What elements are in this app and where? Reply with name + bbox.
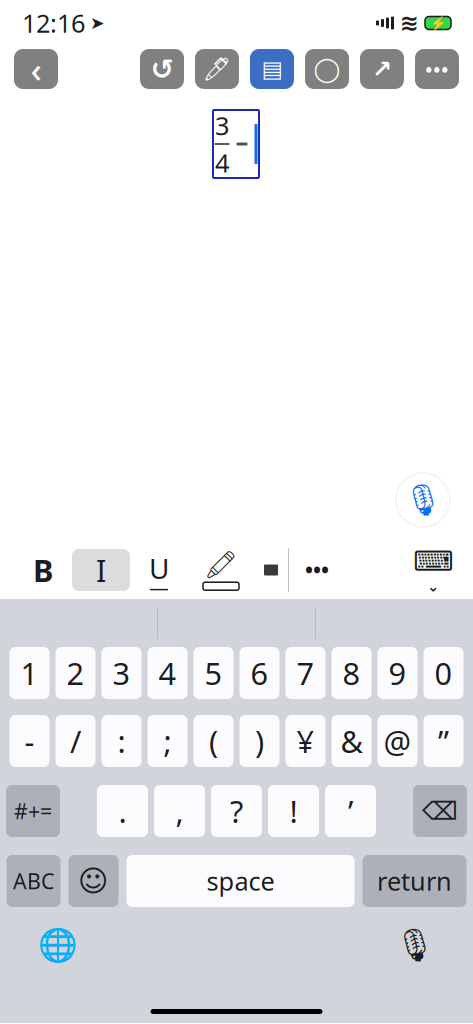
button[interactable]: Dictate xyxy=(396,473,450,527)
staticText: ••• xyxy=(425,56,449,82)
staticText: ⚡ xyxy=(429,15,446,31)
button[interactable]: Bold xyxy=(14,549,72,591)
button[interactable]: ) xyxy=(239,715,279,767)
staticText: ’ xyxy=(348,791,353,831)
button[interactable]: Symbols xyxy=(6,785,60,837)
button[interactable]: 9 xyxy=(377,647,417,699)
button[interactable]: 6 xyxy=(239,647,279,699)
staticText: @ xyxy=(383,721,411,761)
button[interactable]: Delete xyxy=(413,785,467,837)
staticText: ABC xyxy=(13,867,54,895)
button[interactable]: More xyxy=(415,49,459,89)
staticText: - xyxy=(24,721,34,761)
button[interactable]: ¥ xyxy=(285,715,325,767)
button[interactable]: Dictation xyxy=(390,923,440,967)
staticText: ⌨ xyxy=(413,545,453,577)
staticText: ••• xyxy=(305,556,329,584)
staticText: #+= xyxy=(14,797,52,825)
staticText: ⌄ xyxy=(427,578,439,595)
staticText: & xyxy=(340,721,362,761)
staticText: ; xyxy=(163,721,171,761)
staticText: 🌐 xyxy=(38,927,78,963)
staticText: 4 xyxy=(215,146,229,179)
button[interactable]: Hide keyboard xyxy=(407,548,459,592)
staticText: ↗ xyxy=(372,55,392,83)
button[interactable]: Back xyxy=(14,49,58,89)
staticText: 0 xyxy=(434,653,452,693)
staticText: 9 xyxy=(388,653,406,693)
staticText: ” xyxy=(438,721,449,761)
staticText: 3 xyxy=(215,109,229,142)
staticText: 7 xyxy=(296,653,314,693)
staticText: ↺ xyxy=(150,53,173,85)
button[interactable]: 4 xyxy=(147,647,187,699)
button[interactable]: 1 xyxy=(9,647,49,699)
staticText: ) xyxy=(255,721,264,761)
staticText: ! xyxy=(289,791,297,831)
button[interactable]: Share xyxy=(360,49,404,89)
staticText: 🖍 xyxy=(204,550,238,580)
button[interactable]: - xyxy=(9,715,49,767)
button[interactable]: 5 xyxy=(193,647,233,699)
staticText: 4 xyxy=(158,653,176,693)
staticText: / xyxy=(70,721,81,761)
staticText: B xyxy=(33,550,53,590)
button[interactable]: & xyxy=(331,715,371,767)
staticText: , xyxy=(175,791,183,831)
staticText: : xyxy=(117,721,125,761)
staticText: ¥ xyxy=(296,721,314,761)
staticText: I xyxy=(96,550,106,590)
button[interactable]: 0 xyxy=(423,647,463,699)
button[interactable]: Next keyboard xyxy=(33,923,83,967)
button[interactable]: Insert object xyxy=(250,49,294,89)
button[interactable]: / xyxy=(55,715,95,767)
button[interactable]: 7 xyxy=(285,647,325,699)
button[interactable]: Letters xyxy=(6,855,60,907)
button[interactable]: More formatting xyxy=(289,549,345,591)
staticText: 2 xyxy=(66,653,84,693)
button[interactable]: . xyxy=(97,785,148,837)
button[interactable]: , xyxy=(154,785,205,837)
staticText: ≋ xyxy=(400,10,419,36)
staticText: 5 xyxy=(204,653,222,693)
button[interactable]: space xyxy=(126,855,354,907)
button[interactable]: return xyxy=(362,855,466,907)
button[interactable]: : xyxy=(101,715,141,767)
staticText: ▤ xyxy=(261,56,282,82)
button[interactable]: Markup xyxy=(195,49,239,89)
button[interactable]: Color xyxy=(254,549,288,591)
button[interactable]: ? xyxy=(211,785,262,837)
button[interactable]: Highlight xyxy=(188,548,254,592)
staticText: space xyxy=(206,864,274,898)
staticText: ⌫ xyxy=(422,797,458,825)
button[interactable]: Underline xyxy=(130,549,188,591)
button[interactable]: Italic xyxy=(72,549,130,591)
staticText: ◯ xyxy=(313,55,340,83)
button[interactable]: Search xyxy=(305,49,349,89)
button[interactable]: ” xyxy=(423,715,463,767)
staticText: ? xyxy=(230,791,243,831)
button[interactable]: 2 xyxy=(55,647,95,699)
staticText: ➤ xyxy=(90,13,105,33)
button[interactable]: ; xyxy=(147,715,187,767)
staticText: 8 xyxy=(342,653,360,693)
staticText: 6 xyxy=(250,653,268,693)
staticText: return xyxy=(377,864,452,898)
button[interactable]: Undo xyxy=(140,49,184,89)
staticText: ☺ xyxy=(78,864,109,898)
staticText: 🎙 xyxy=(394,927,435,963)
staticText: ‹ xyxy=(30,46,41,92)
button[interactable]: 3 xyxy=(101,647,141,699)
button[interactable]: ! xyxy=(268,785,319,837)
staticText: 12:16 xyxy=(22,6,85,40)
button[interactable]: 8 xyxy=(331,647,371,699)
button[interactable]: ( xyxy=(193,715,233,767)
staticText: 🎙 xyxy=(403,482,442,517)
staticText: 3 xyxy=(112,653,130,693)
button[interactable]: @ xyxy=(377,715,417,767)
staticText: 🖊 xyxy=(202,56,231,82)
staticText: ( xyxy=(209,721,218,761)
staticText: 1 xyxy=(20,653,38,693)
button[interactable]: ’ xyxy=(325,785,376,837)
button[interactable]: Emoji xyxy=(68,855,118,907)
